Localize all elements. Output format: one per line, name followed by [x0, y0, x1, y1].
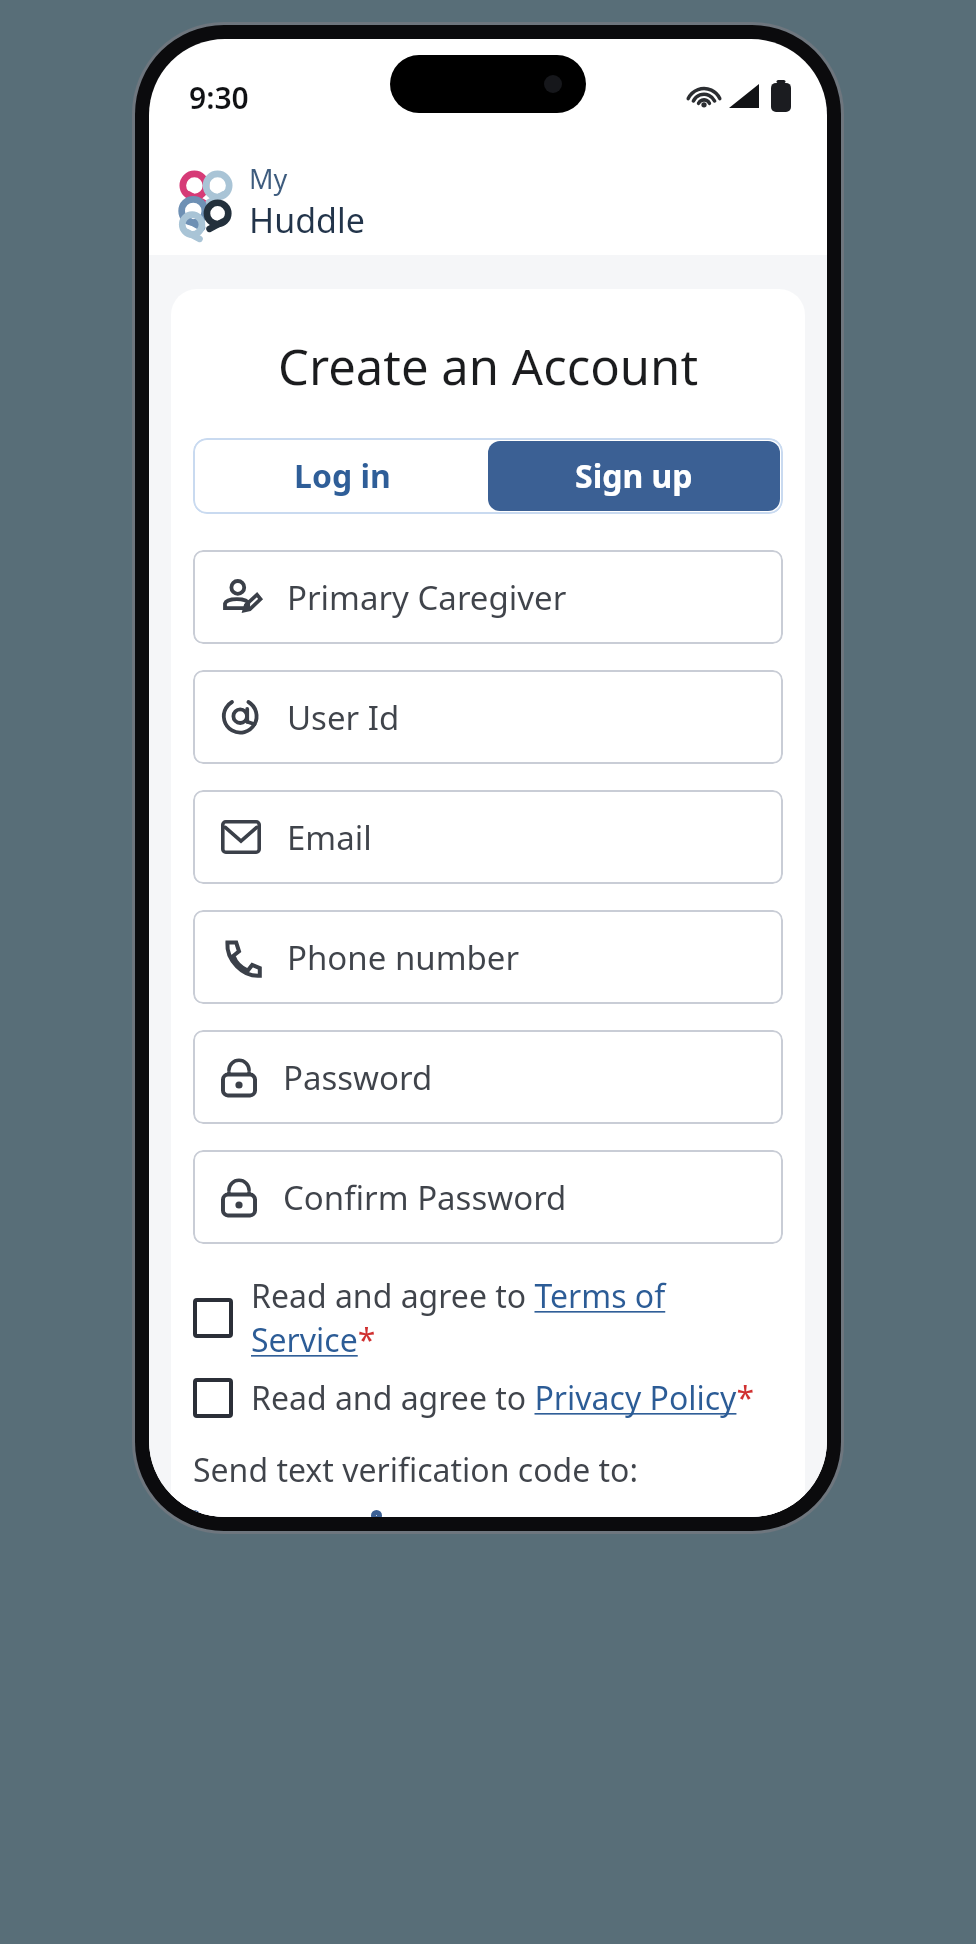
staticText: Create an Account	[171, 333, 805, 400]
button[interactable]: Password	[193, 1030, 783, 1124]
staticText: Primary Caregiver	[287, 575, 567, 620]
button[interactable]: Confirm Password	[193, 1150, 783, 1244]
button[interactable]: Read and agree to Privacy Policy*	[193, 1376, 783, 1420]
button[interactable]: Phone	[193, 1514, 349, 1517]
button[interactable]: Email	[193, 790, 783, 884]
staticText: Read and agree to Terms of Service*	[251, 1274, 783, 1362]
staticText: Password	[283, 1055, 433, 1100]
button[interactable]: Sign up	[488, 441, 780, 511]
staticText: 9:30	[189, 77, 249, 118]
staticText: My	[249, 160, 288, 197]
button[interactable]: Email	[375, 1514, 516, 1517]
staticText: Sign up	[575, 454, 693, 498]
staticText: Send text verification code to:	[193, 1448, 639, 1492]
button[interactable]: User Id	[193, 670, 783, 764]
staticText: Log in	[294, 454, 391, 498]
staticText: Email	[287, 815, 372, 860]
staticText: Confirm Password	[283, 1175, 567, 1220]
staticText: Read and agree to Privacy Policy*	[251, 1376, 755, 1420]
staticText: Huddle	[249, 197, 365, 243]
button[interactable]: Primary Caregiver	[193, 550, 783, 644]
staticText: User Id	[287, 695, 400, 740]
button[interactable]: Log in	[196, 441, 488, 511]
button[interactable]: Read and agree to Terms of Service*	[193, 1274, 783, 1362]
button[interactable]: Phone number	[193, 910, 783, 1004]
staticText: Phone number	[287, 935, 520, 980]
